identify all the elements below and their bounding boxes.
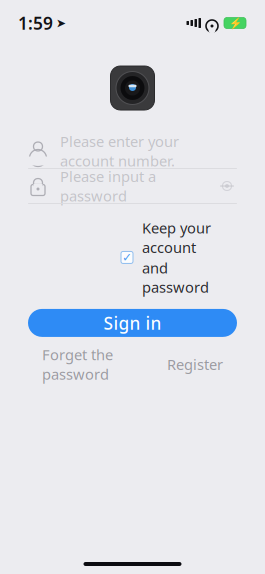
staticText: Sign in xyxy=(103,311,161,334)
button[interactable]: Sign in xyxy=(28,309,237,337)
staticText: Please enter your account number. xyxy=(60,131,179,170)
button[interactable]: Register xyxy=(167,355,223,374)
staticText: password xyxy=(42,364,109,384)
button[interactable]: Forget the xyxy=(42,345,113,384)
button[interactable]: Show password xyxy=(217,176,237,196)
staticText: and password xyxy=(142,258,209,297)
staticText: Register xyxy=(167,355,223,374)
staticText: Keep your account xyxy=(142,218,211,257)
staticText: ⚡ xyxy=(228,17,241,29)
button[interactable]: ✓ xyxy=(0,218,265,297)
staticText: Please input a password xyxy=(60,166,156,205)
staticText: Forget the xyxy=(42,345,113,364)
staticText: 1:59 xyxy=(18,11,53,34)
staticText: ✓ xyxy=(122,251,132,264)
staticText: ➤ xyxy=(56,16,66,30)
